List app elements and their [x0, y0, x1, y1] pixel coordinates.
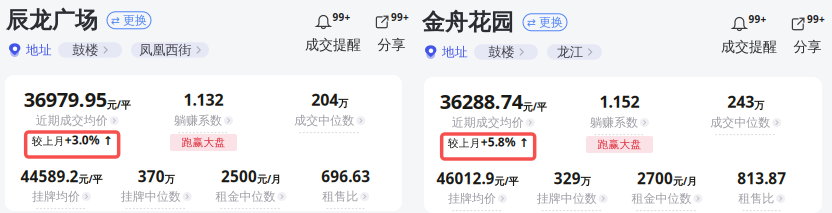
staticText: 挂牌均价 — [32, 189, 80, 204]
button[interactable]: 挂牌中位数 — [121, 189, 192, 204]
staticText: 挂牌中位数 — [121, 189, 181, 204]
staticText: 36288.74元/平 — [440, 88, 547, 115]
button[interactable]: 躺赚系数 — [590, 115, 649, 130]
button[interactable]: ⇄ — [107, 12, 151, 29]
staticText: 1.152 — [599, 91, 639, 112]
staticText: 金舟花园 — [422, 8, 514, 37]
button[interactable]: 挂牌中位数 — [537, 191, 608, 206]
staticText: 成交提醒 — [305, 36, 361, 54]
button[interactable]: 躺赚系数 — [174, 113, 233, 128]
staticText: 租售比 — [322, 189, 358, 204]
staticText: 分享 — [793, 38, 821, 56]
button[interactable]: 99+ — [790, 16, 825, 56]
staticText: 99+ — [332, 10, 350, 24]
staticText: ⇄ — [111, 14, 120, 26]
staticText: 较上月+5.8% ↑ — [448, 134, 529, 150]
button[interactable]: 租金中位数 — [215, 189, 286, 204]
staticText: 44589.2元/平 — [20, 166, 102, 186]
button[interactable]: 租金中位数 — [631, 191, 702, 206]
staticText: 凤凰西街 — [139, 42, 191, 58]
staticText: 近期成交均价 — [452, 115, 524, 130]
staticText: 99+ — [807, 12, 825, 26]
staticText: 696.63 — [321, 166, 370, 186]
staticText: 地址 — [26, 42, 52, 58]
staticText: 成交提醒 — [721, 38, 777, 56]
staticText: 挂牌中位数 — [537, 191, 597, 206]
button[interactable]: 成交中位数 — [710, 115, 781, 130]
staticText: 跑赢大盘 — [181, 136, 225, 149]
staticText: 租金中位数 — [631, 191, 691, 206]
staticText: 204万 — [311, 89, 348, 110]
staticText: 成交中位数 — [710, 115, 770, 130]
button[interactable]: 鼓楼 — [474, 44, 538, 60]
button[interactable]: 近期成交均价 — [452, 115, 535, 130]
staticText: 较上月+3.0% ↑ — [32, 132, 113, 148]
staticText: 跑赢大盘 — [597, 138, 641, 151]
staticText: 329万 — [554, 168, 591, 188]
button[interactable]: 成交中位数 — [294, 113, 365, 128]
button[interactable]: 凤凰西街 — [131, 42, 209, 58]
staticText: 租售比 — [738, 191, 774, 206]
staticText: 躺赚系数 — [174, 113, 222, 128]
staticText: 地址 — [442, 44, 468, 60]
staticText: 46012.9元/平 — [436, 168, 518, 188]
button[interactable]: 租售比 — [738, 191, 785, 206]
staticText: 成交中位数 — [294, 113, 354, 128]
staticText: 813.87 — [737, 168, 786, 188]
button[interactable]: 龙江 — [547, 44, 602, 60]
button[interactable]: 99+ — [305, 14, 361, 54]
button[interactable]: 鼓楼 — [58, 42, 122, 58]
button[interactable]: 挂牌均价 — [448, 191, 507, 206]
staticText: 99+ — [748, 12, 766, 26]
staticText: 36979.95元/平 — [24, 86, 131, 113]
staticText: 鼓楼 — [72, 42, 98, 58]
staticText: ⇄ — [527, 16, 536, 28]
staticText: 更换 — [123, 13, 147, 28]
staticText: 更换 — [539, 15, 563, 30]
button[interactable]: 挂牌均价 — [32, 189, 91, 204]
button[interactable]: ⇄ — [523, 14, 567, 31]
staticText: 2700元/月 — [637, 168, 697, 188]
button[interactable]: 近期成交均价 — [36, 113, 119, 128]
staticText: 龙江 — [557, 44, 583, 60]
staticText: 挂牌均价 — [448, 191, 496, 206]
button[interactable]: 较上月+3.0% ↑ — [32, 132, 113, 148]
staticText: 分享 — [377, 36, 405, 54]
button[interactable]: 较上月+5.8% ↑ — [448, 134, 529, 150]
staticText: 1.132 — [183, 89, 223, 110]
staticText: 辰龙广场 — [6, 6, 98, 35]
button[interactable]: 租售比 — [322, 189, 369, 204]
staticText: 2500元/月 — [221, 166, 281, 186]
staticText: 鼓楼 — [488, 44, 514, 60]
staticText: 躺赚系数 — [590, 115, 638, 130]
button[interactable]: 99+ — [721, 16, 777, 56]
staticText: 租金中位数 — [215, 189, 275, 204]
staticText: 370万 — [138, 166, 175, 186]
staticText: 近期成交均价 — [36, 113, 108, 128]
staticText: 243万 — [727, 91, 764, 112]
button[interactable]: 99+ — [374, 14, 409, 54]
staticText: 99+ — [391, 10, 409, 24]
